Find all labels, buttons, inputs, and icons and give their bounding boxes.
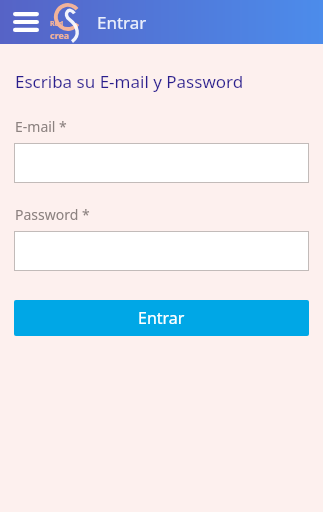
button[interactable]: E-mail input field: [14, 143, 309, 183]
staticText: Entrar: [138, 307, 185, 329]
staticText: E-mail *: [15, 117, 67, 136]
staticText: Red: [50, 19, 64, 29]
other: Red Crea logo: [49, 1, 89, 43]
staticText: Escriba su E-mail y Password: [15, 70, 244, 93]
button[interactable]: Entrar: [14, 300, 309, 336]
staticText: crea: [50, 29, 70, 41]
staticText: Entrar: [97, 11, 147, 34]
button[interactable]: Password input field: [14, 231, 309, 271]
button[interactable]: Open navigation menu: [9, 7, 43, 37]
staticText: Password *: [15, 205, 90, 224]
